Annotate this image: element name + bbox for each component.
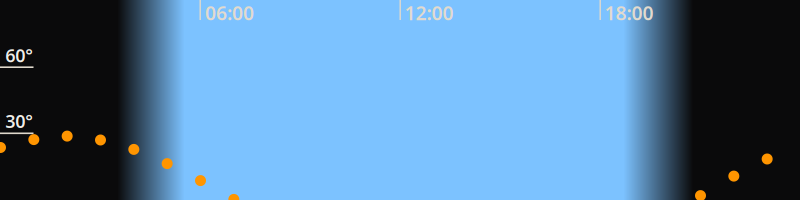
staticText: 30° xyxy=(5,109,33,133)
staticText: 18:00 xyxy=(604,0,653,26)
staticText: 12:00 xyxy=(404,0,453,26)
staticText: 60° xyxy=(5,43,33,67)
staticText: 06:00 xyxy=(205,0,254,26)
